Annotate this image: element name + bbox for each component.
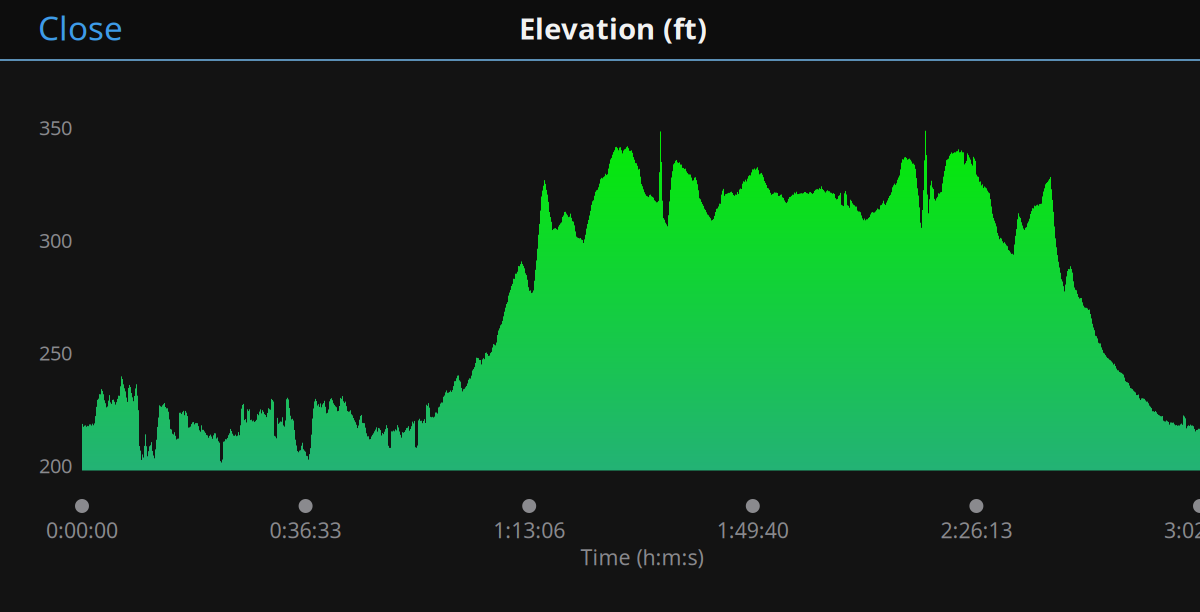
staticText: 1:49:40 [717, 516, 789, 544]
staticText: 250 [39, 340, 72, 366]
staticText: Elevation (ft) [519, 8, 707, 47]
staticText: 3:02:46 [1164, 516, 1200, 544]
staticText: Close [38, 5, 123, 50]
staticText: 2:26:13 [940, 516, 1012, 544]
staticText: 0:36:33 [270, 516, 342, 544]
staticText: 0:00:00 [46, 516, 118, 544]
staticText: 350 [39, 114, 72, 141]
button[interactable]: Close [0, 0, 178, 57]
staticText: Time (h:m:s) [580, 543, 703, 571]
staticText: 300 [39, 227, 72, 253]
staticText: 200 [39, 452, 72, 479]
staticText: 1:13:06 [493, 516, 565, 544]
